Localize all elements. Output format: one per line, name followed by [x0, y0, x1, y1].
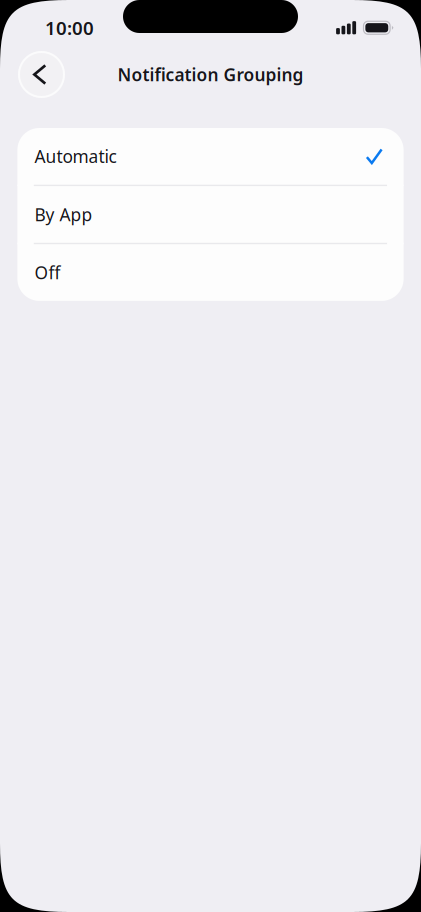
- staticText: 10:00: [45, 15, 94, 40]
- staticText: Notification Grouping: [117, 63, 303, 86]
- staticText: Automatic: [34, 145, 116, 168]
- button[interactable]: Off: [17, 244, 404, 301]
- button[interactable]: Automatic: [17, 128, 404, 185]
- staticText: Off: [34, 261, 60, 284]
- staticText: By App: [34, 203, 92, 226]
- button[interactable]: Back: [18, 51, 65, 98]
- button[interactable]: By App: [17, 186, 404, 243]
